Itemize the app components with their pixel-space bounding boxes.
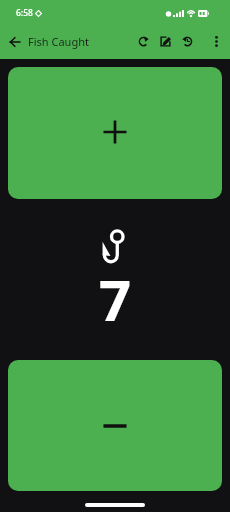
button[interactable]: Refresh bbox=[132, 24, 154, 59]
button[interactable]: More options bbox=[198, 24, 230, 59]
button[interactable]: History bbox=[176, 24, 198, 59]
staticText: 6:58 bbox=[16, 7, 33, 19]
staticText: Fish Caught bbox=[28, 34, 89, 49]
button[interactable]: Increment bbox=[8, 67, 222, 199]
button[interactable]: Edit bbox=[154, 24, 176, 59]
button[interactable]: Decrement bbox=[8, 360, 222, 491]
staticText: 7 bbox=[99, 261, 132, 337]
button[interactable]: Back bbox=[0, 24, 28, 59]
